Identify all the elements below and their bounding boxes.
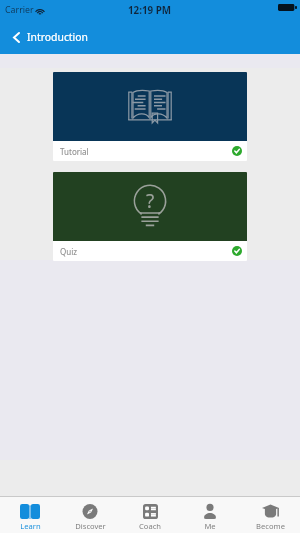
staticText: Quiz [60,246,78,257]
staticText: Carrier [5,4,34,16]
staticText: Tutorial [60,146,89,157]
staticText: ? [146,188,155,214]
button[interactable]: Me [180,497,240,533]
button[interactable]: Learn [0,497,60,533]
staticText: Introduction [27,30,89,44]
staticText: 12:19 PM [128,4,172,17]
button[interactable]: Tutorial [53,72,247,161]
button[interactable]: Back [0,21,30,53]
staticText: Learn [20,521,41,531]
button[interactable]: ? [53,172,247,261]
staticText: Me [204,521,216,531]
button[interactable]: Coach [120,497,180,533]
button[interactable]: Become [240,497,300,533]
button[interactable]: Discover [60,497,120,533]
staticText: Become [256,521,285,531]
staticText: Discover [75,521,106,531]
staticText: Coach [139,521,161,531]
